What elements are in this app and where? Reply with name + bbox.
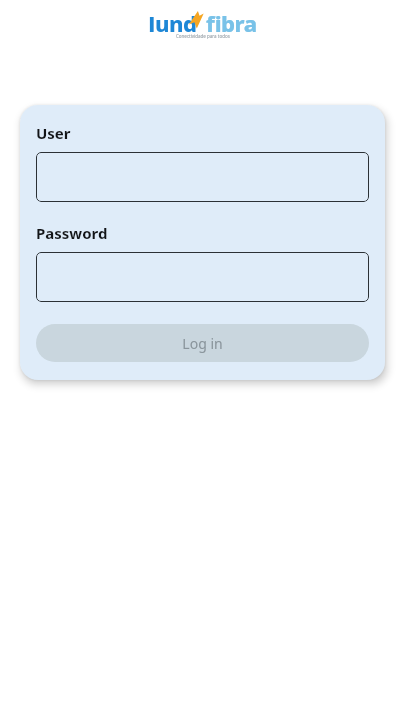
staticText: Log in [182, 334, 223, 353]
button[interactable]: Log in [36, 324, 369, 362]
staticText: Jund [148, 8, 197, 32]
staticText: Conectividade para todos [176, 33, 230, 39]
button[interactable]: Text input field [36, 252, 369, 302]
button[interactable]: Text input field [36, 152, 369, 202]
staticText: Password [36, 223, 108, 243]
staticText: User [36, 123, 71, 143]
staticText: fibra [206, 8, 257, 32]
